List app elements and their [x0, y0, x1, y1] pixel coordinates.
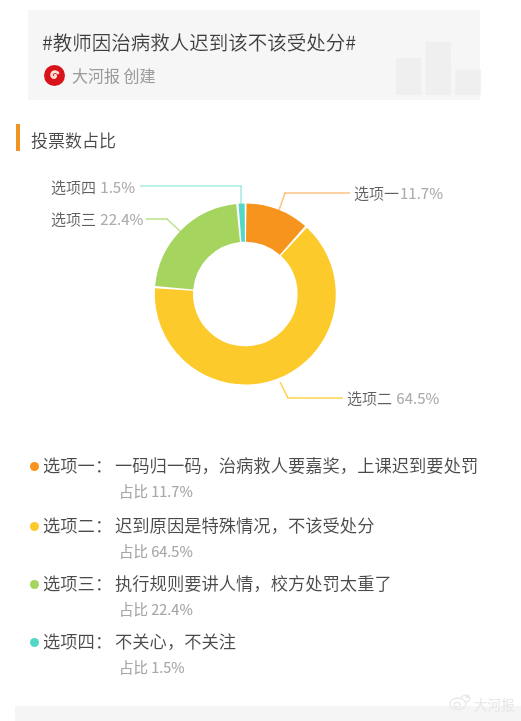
staticText: 选项二：: [43, 512, 113, 537]
staticText: 1.5%: [97, 176, 135, 198]
other: Weibo account avatar: [44, 65, 65, 86]
staticText: 选项三：: [43, 570, 113, 595]
staticText: 占比 1.5%: [119, 656, 185, 677]
staticText: 选项二: [347, 387, 393, 409]
staticText: 一码归一码，治病救人要嘉奖，上课迟到要处罚: [115, 452, 479, 477]
staticText: 占比 11.7%: [119, 480, 193, 501]
staticText: 选项四：: [43, 628, 113, 653]
staticText: 选项三: [51, 208, 97, 230]
staticText: 不关心，不关注: [115, 628, 237, 653]
staticText: 选项四: [51, 176, 97, 198]
staticText: 64.5%: [393, 387, 440, 409]
staticText: 选项一：: [43, 452, 113, 477]
button[interactable]: 选项四：: [0, 628, 521, 684]
button[interactable]: 选项三：: [0, 570, 521, 626]
staticText: 占比 22.4%: [119, 598, 193, 619]
staticText: 选项一: [354, 182, 400, 204]
button[interactable]: 选项二：: [0, 512, 521, 568]
staticText: 大河报: [474, 694, 515, 714]
staticText: 大河报 创建: [72, 63, 156, 86]
staticText: 迟到原因是特殊情况，不该受处分: [115, 512, 375, 537]
staticText: 11.7%: [400, 182, 443, 204]
staticText: #教师因治病救人迟到该不该受处分#: [42, 27, 357, 55]
staticText: 投票数占比: [31, 127, 116, 152]
button[interactable]: #教师因治病救人迟到该不该受处分#: [28, 10, 480, 100]
staticText: 占比 64.5%: [119, 540, 193, 561]
staticText: 22.4%: [97, 208, 144, 230]
staticText: 执行规则要讲人情，校方处罚太重了: [115, 570, 392, 595]
button[interactable]: 选项一：: [0, 452, 521, 508]
